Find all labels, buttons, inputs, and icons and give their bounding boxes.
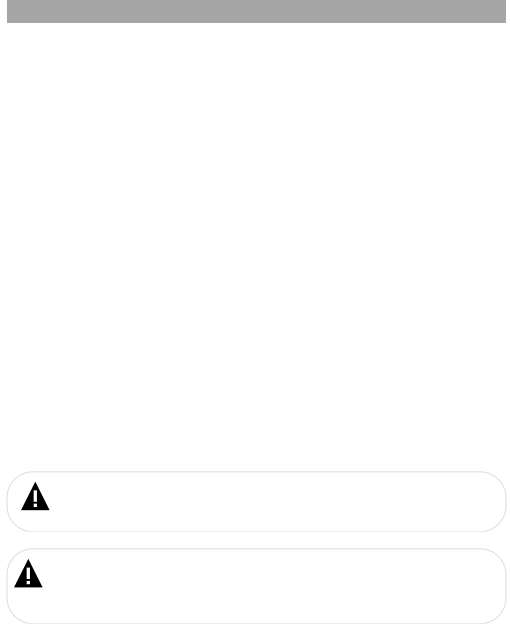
button[interactable]: Warning (7, 549, 506, 624)
button[interactable]: Warning (7, 472, 506, 532)
